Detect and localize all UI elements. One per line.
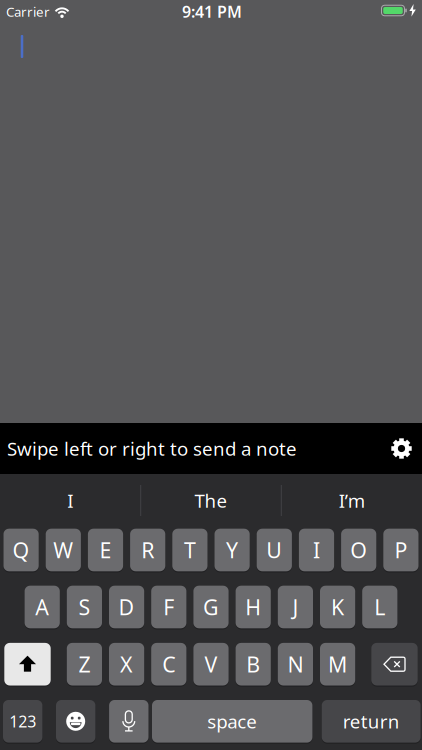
staticText: W (53, 536, 73, 564)
button[interactable]: I’m (287, 477, 417, 523)
staticText: The (194, 488, 227, 513)
staticText: U (266, 536, 282, 564)
staticText: M (328, 650, 347, 678)
staticText: D (119, 593, 135, 621)
button[interactable]: return (322, 700, 421, 743)
button[interactable]: M (320, 643, 355, 685)
button[interactable]: H (236, 586, 271, 628)
button[interactable]: Z (67, 643, 102, 685)
button[interactable]: E (88, 529, 123, 571)
staticText: Swipe left or right to send a note (7, 436, 297, 461)
staticText: Z (78, 650, 90, 678)
button[interactable]: K (320, 586, 355, 628)
staticText: O (350, 536, 367, 564)
staticText: L (374, 593, 385, 621)
button[interactable]: L (362, 586, 397, 628)
staticText: B (246, 650, 260, 678)
button[interactable]: G (193, 586, 229, 628)
staticText: C (162, 650, 175, 678)
staticText: I’m (339, 488, 365, 513)
staticText: Q (13, 536, 30, 564)
button[interactable]: I (5, 477, 135, 523)
button[interactable]: The (146, 477, 276, 523)
button[interactable]: Emoji (56, 700, 95, 743)
staticText: V (204, 650, 217, 678)
button[interactable]: Delete (371, 643, 418, 685)
button[interactable]: W (46, 529, 81, 571)
button[interactable]: A (25, 586, 60, 628)
button[interactable]: U (257, 529, 292, 571)
staticText: R (141, 536, 154, 564)
staticText: G (203, 593, 219, 621)
button[interactable]: Dictation (109, 700, 148, 743)
button[interactable]: Settings (389, 436, 413, 460)
button[interactable]: N (278, 643, 313, 685)
staticText: K (331, 593, 344, 621)
staticText: S (78, 593, 90, 621)
staticText: J (292, 593, 298, 621)
button[interactable]: F (151, 586, 186, 628)
button[interactable]: 123 (3, 700, 42, 743)
staticText: I (67, 488, 73, 513)
staticText: T (184, 536, 196, 564)
staticText: I (313, 536, 320, 564)
button[interactable]: P (383, 529, 418, 571)
button[interactable]: O (341, 529, 376, 571)
staticText: X (120, 650, 133, 678)
button[interactable]: Shift (4, 643, 51, 685)
staticText: N (287, 650, 303, 678)
staticText: A (35, 593, 49, 621)
button[interactable]: D (109, 586, 144, 628)
button[interactable]: Q (3, 529, 39, 571)
button[interactable]: V (193, 643, 229, 685)
staticText: Y (226, 536, 238, 564)
button[interactable]: S (67, 586, 102, 628)
staticText: space (207, 709, 257, 734)
staticText: Carrier (6, 3, 50, 20)
staticText: return (343, 709, 400, 734)
button[interactable]: X (109, 643, 144, 685)
button[interactable]: R (130, 529, 165, 571)
staticText: 9:41 PM (182, 1, 242, 22)
button[interactable]: B (236, 643, 271, 685)
button[interactable]: C (151, 643, 186, 685)
staticText: F (163, 593, 174, 621)
staticText: P (394, 536, 407, 564)
button[interactable]: J (278, 586, 313, 628)
button[interactable]: Y (214, 529, 250, 571)
button[interactable]: T (172, 529, 207, 571)
button[interactable]: space (152, 700, 312, 743)
staticText: 123 (9, 711, 36, 732)
button[interactable]: I (299, 529, 334, 571)
staticText: H (245, 593, 261, 621)
staticText: E (99, 536, 111, 564)
